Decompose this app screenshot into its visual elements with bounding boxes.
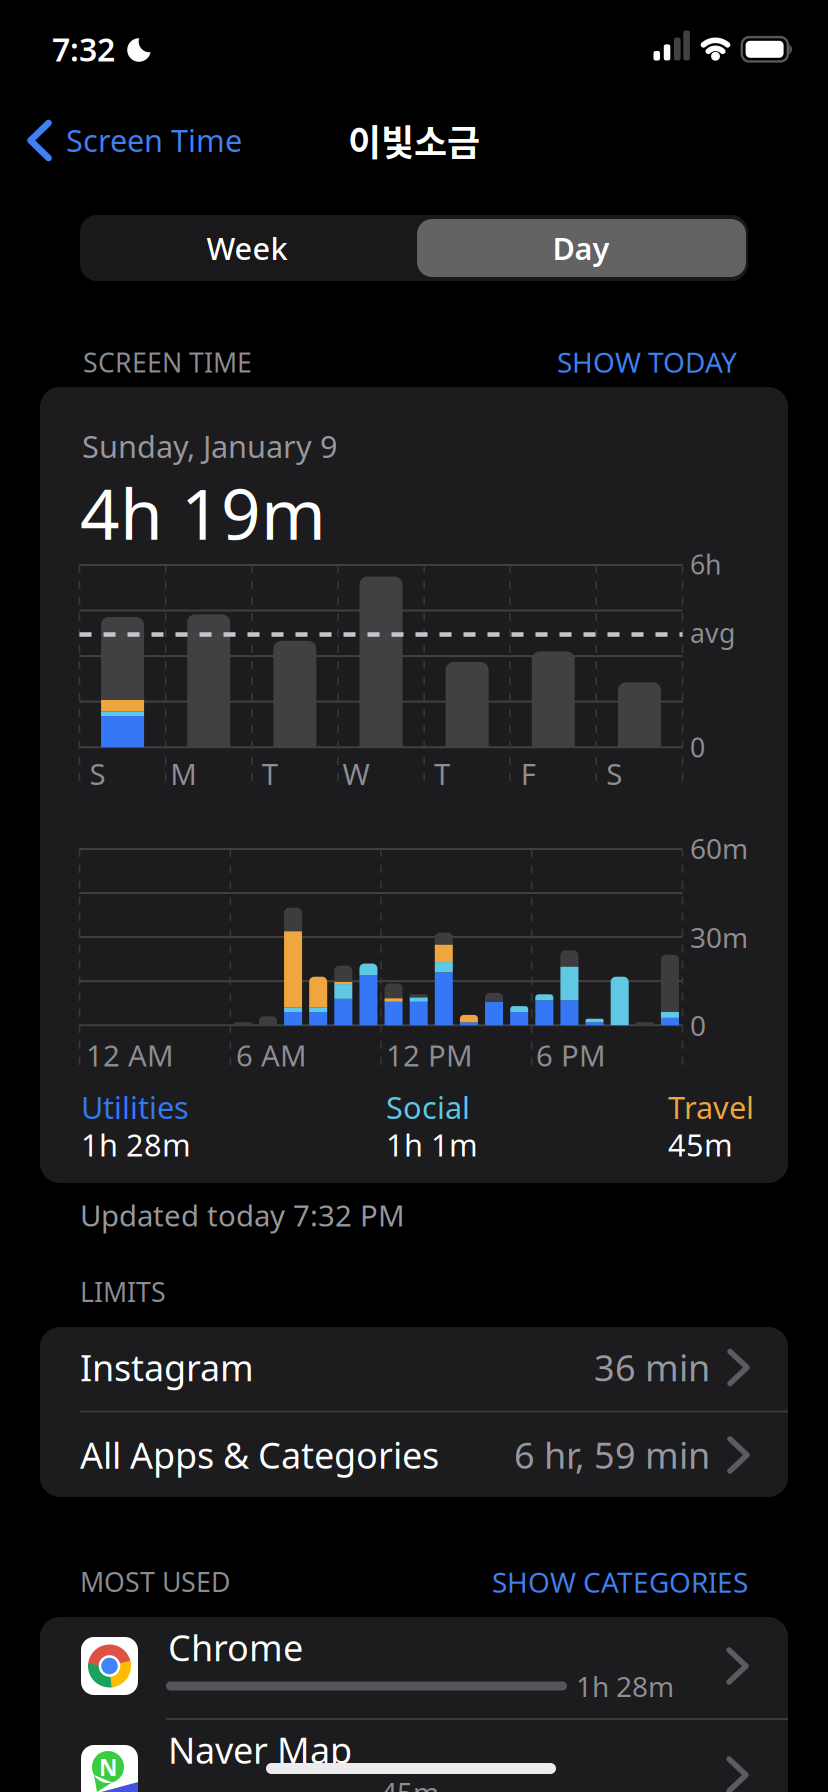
button[interactable]: Day [414, 215, 748, 281]
staticText: All Apps & Categories [80, 1431, 439, 1479]
staticText: 45m [668, 1124, 733, 1165]
staticText: MOST USED [80, 1564, 230, 1599]
staticText: Social [386, 1087, 470, 1127]
staticText: SHOW CATEGORIES [492, 1563, 748, 1601]
staticText: 6h [690, 546, 721, 582]
staticText: avg [690, 615, 735, 650]
staticText: Naver Map [168, 1726, 352, 1774]
button[interactable]: Instagram [40, 1327, 788, 1411]
staticText: T [262, 754, 278, 793]
staticText: 0 [690, 729, 705, 765]
staticText: Travel [668, 1087, 754, 1127]
button[interactable]: Week [80, 215, 414, 281]
staticText: 6 AM [236, 1036, 307, 1075]
button[interactable]: SHOW TODAY [497, 344, 737, 380]
staticText: Updated today 7:32 PM [80, 1196, 405, 1235]
staticText: F [521, 754, 536, 793]
staticText: T [434, 754, 450, 793]
staticText: Sunday, January 9 [82, 426, 338, 466]
button[interactable]: SHOW CATEGORIES [438, 1564, 748, 1600]
staticText: 1h 1m [386, 1124, 478, 1165]
button[interactable]: Chrome [40, 1617, 788, 1719]
staticText: 6 hr, 59 min [514, 1431, 710, 1479]
staticText: 12 PM [386, 1036, 473, 1075]
staticText: W [342, 754, 369, 793]
staticText: 0 [690, 1006, 706, 1044]
staticText: N [99, 1752, 117, 1782]
staticText: Chrome [168, 1623, 303, 1671]
staticText: Week [206, 228, 287, 268]
staticText: 36 min [594, 1343, 710, 1391]
staticText: Screen Time [66, 120, 242, 160]
staticText: 1h 28m [576, 1667, 674, 1705]
staticText: Utilities [81, 1087, 189, 1127]
staticText: 30m [690, 918, 748, 956]
staticText: 45m [381, 1773, 439, 1792]
button[interactable]: All Apps & Categories [40, 1413, 788, 1497]
staticText: 1h 28m [81, 1124, 191, 1165]
staticText: 12 AM [86, 1036, 174, 1075]
staticText: 4h 19m [80, 467, 326, 559]
staticText: SCREEN TIME [83, 344, 252, 380]
staticText: 이빛소금 [348, 114, 480, 166]
staticText: 6 PM [536, 1036, 606, 1075]
staticText: Day [552, 228, 609, 268]
staticText: Instagram [80, 1343, 254, 1391]
staticText: S [606, 754, 622, 793]
staticText: S [89, 754, 105, 793]
button[interactable]: N [40, 1719, 788, 1792]
staticText: M [170, 754, 197, 793]
staticText: 60m [690, 829, 748, 867]
button[interactable]: Back [27, 112, 255, 169]
staticText: SHOW TODAY [557, 343, 737, 381]
staticText: 7:32 [52, 28, 115, 70]
staticText: LIMITS [80, 1274, 166, 1309]
